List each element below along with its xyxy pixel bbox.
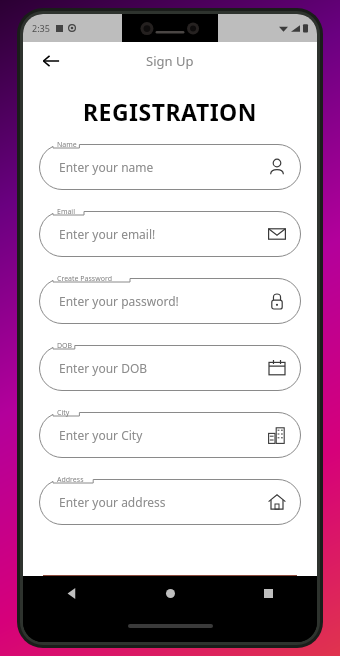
button[interactable]: Home — [121, 576, 219, 610]
staticText: DOB — [57, 341, 73, 351]
button[interactable]: Email — [39, 211, 301, 257]
button[interactable]: Back — [33, 43, 69, 79]
staticText: Enter your password! — [59, 293, 179, 309]
button[interactable]: Create Password — [39, 278, 301, 324]
staticText: Enter your address — [59, 494, 166, 510]
button[interactable]: DOB — [39, 345, 301, 391]
staticText: Enter your name — [59, 159, 154, 175]
button[interactable]: City — [39, 412, 301, 458]
staticText: Sign Up — [146, 52, 194, 70]
staticText: Email — [57, 207, 75, 217]
staticText: 2:35 — [32, 22, 50, 34]
staticText: Enter your City — [59, 427, 143, 443]
staticText: Enter your email! — [59, 226, 156, 242]
staticText: Name — [57, 140, 77, 150]
button[interactable]: Name — [39, 144, 301, 190]
button[interactable]: Address — [39, 479, 301, 525]
button[interactable]: Back — [23, 576, 121, 610]
staticText: City — [57, 408, 70, 418]
staticText: Address — [57, 475, 84, 485]
button[interactable]: Recent apps — [219, 576, 317, 610]
staticText: Create Password — [57, 274, 113, 284]
staticText: REGISTRATION — [23, 96, 317, 127]
staticText: Enter your DOB — [59, 360, 148, 376]
